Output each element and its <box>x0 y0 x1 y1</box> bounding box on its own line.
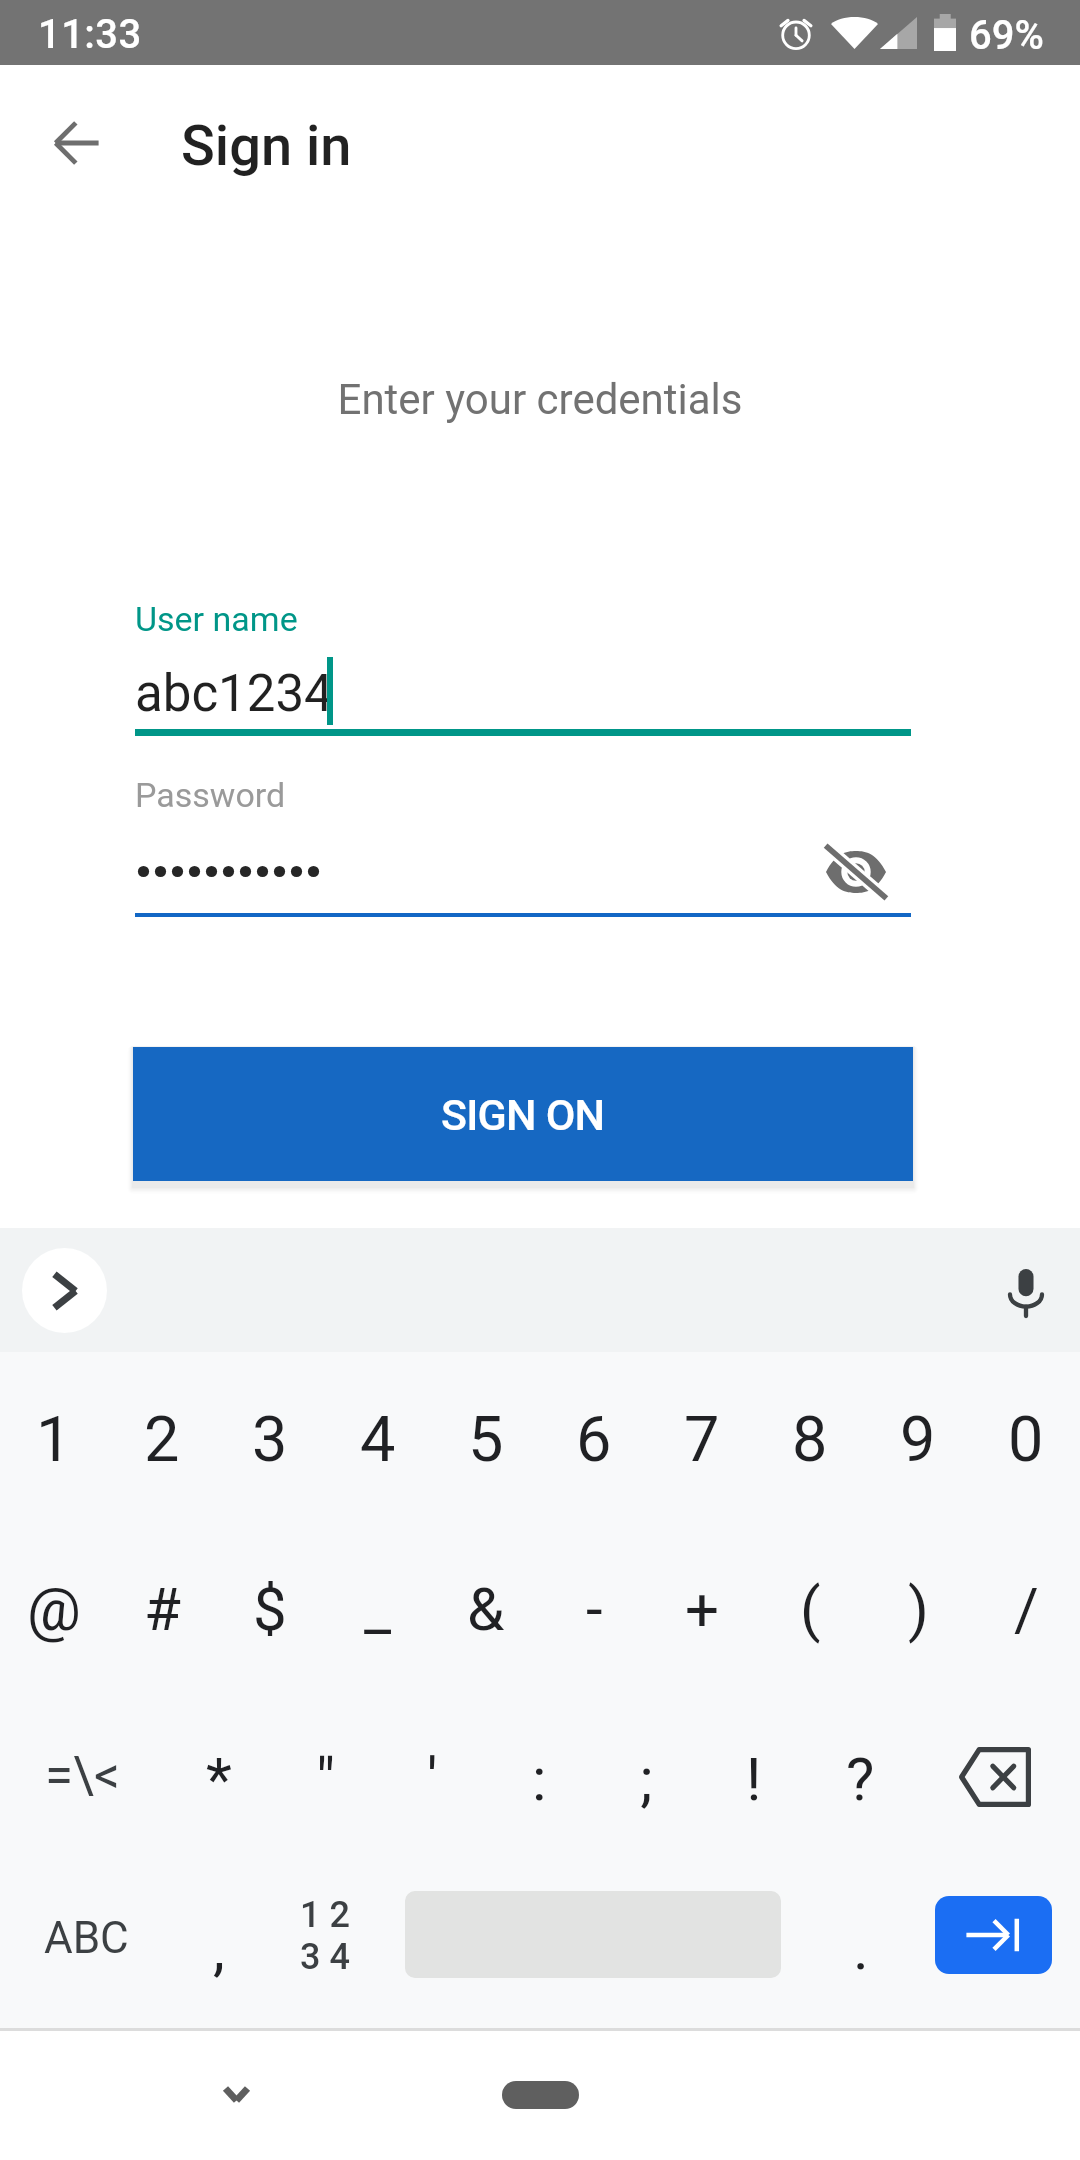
button[interactable]: 4 <box>324 1352 432 1521</box>
staticText: 9 <box>900 1403 936 1477</box>
button[interactable]: ABC <box>0 1859 165 2028</box>
button[interactable]: 1 <box>0 1352 108 1521</box>
button[interactable]: Show suggestions <box>22 1248 107 1333</box>
staticText: 5 <box>468 1403 504 1477</box>
staticText: Sign in <box>181 113 352 179</box>
button[interactable]: SIGN ON <box>133 1047 913 1181</box>
staticText: Password <box>135 775 286 815</box>
staticText: ; <box>640 1744 653 1814</box>
button[interactable]: Next field <box>935 1896 1052 1974</box>
staticText: 0 <box>1008 1403 1044 1477</box>
button[interactable]: Home <box>502 2081 579 2109</box>
button[interactable]: Backspace <box>914 1690 1080 1859</box>
staticText: $ <box>253 1574 287 1644</box>
button[interactable]: 2 <box>108 1352 216 1521</box>
button[interactable]: 7 <box>648 1352 756 1521</box>
staticText: 1 <box>36 1403 72 1477</box>
button[interactable]: _ <box>324 1521 432 1690</box>
staticText: / <box>1014 1574 1039 1644</box>
staticText: 8 <box>792 1403 828 1477</box>
staticText: 2 <box>144 1403 180 1477</box>
staticText: ABC <box>44 1912 129 1964</box>
button[interactable]: Show password <box>812 828 900 916</box>
button[interactable]: + <box>648 1521 756 1690</box>
staticText: @ <box>27 1574 81 1644</box>
button[interactable]: : <box>486 1690 593 1859</box>
staticText: , <box>213 1913 225 1983</box>
button[interactable]: ; <box>593 1690 700 1859</box>
button[interactable]: ( <box>756 1521 864 1690</box>
staticText: : <box>532 1744 547 1814</box>
staticText: _ <box>364 1574 392 1644</box>
staticText: 11:33 <box>38 11 142 58</box>
button[interactable]: Navigate up <box>33 99 121 187</box>
staticText: 3 <box>252 1403 288 1477</box>
button[interactable]: * <box>165 1690 272 1859</box>
staticText: ) <box>908 1574 929 1644</box>
button[interactable]: 0 <box>972 1352 1080 1521</box>
staticText: SIGN ON <box>441 1090 605 1140</box>
staticText: ! <box>746 1744 762 1814</box>
button[interactable]: ) <box>864 1521 972 1690</box>
button[interactable]: Hide keyboard <box>196 2054 276 2134</box>
button[interactable]: . <box>807 1859 914 2028</box>
button[interactable]: @ <box>0 1521 108 1690</box>
staticText: ' <box>427 1744 438 1814</box>
staticText: Enter your credentials <box>0 375 1080 424</box>
button[interactable]: ! <box>700 1690 807 1859</box>
button[interactable]: & <box>432 1521 540 1690</box>
staticText: 4 <box>360 1403 396 1477</box>
button[interactable]: 5 <box>432 1352 540 1521</box>
button[interactable]: - <box>540 1521 648 1690</box>
staticText: 69% <box>969 12 1044 59</box>
button[interactable]: 9 <box>864 1352 972 1521</box>
button[interactable]: / <box>972 1521 1080 1690</box>
staticText: 6 <box>576 1403 612 1477</box>
staticText: * <box>206 1744 232 1814</box>
button[interactable]: ' <box>379 1690 486 1859</box>
button[interactable]: $ <box>216 1521 324 1690</box>
staticText: - <box>586 1574 603 1644</box>
staticText: 7 <box>684 1403 720 1477</box>
button[interactable]: =\< <box>0 1690 165 1859</box>
staticText: ? <box>846 1744 875 1814</box>
button[interactable]: , <box>165 1859 272 2028</box>
staticText: User name <box>135 599 298 639</box>
button[interactable]: Numbers <box>272 1859 378 2028</box>
staticText: . <box>853 1913 869 1983</box>
staticText: 1 2 <box>300 1894 350 1936</box>
button[interactable]: " <box>272 1690 379 1859</box>
staticText: =\< <box>45 1746 120 1806</box>
staticText: 3 4 <box>300 1936 350 1978</box>
staticText: " <box>316 1744 336 1814</box>
button[interactable]: 8 <box>756 1352 864 1521</box>
staticText: # <box>144 1574 181 1644</box>
button[interactable]: Voice input <box>986 1252 1066 1332</box>
button[interactable]: ? <box>807 1690 914 1859</box>
staticText: abc1234 <box>135 664 333 724</box>
button[interactable]: 6 <box>540 1352 648 1521</box>
button[interactable]: # <box>108 1521 216 1690</box>
staticText: ( <box>800 1574 821 1644</box>
staticText: + <box>685 1574 720 1644</box>
staticText: & <box>467 1574 505 1644</box>
button[interactable]: 3 <box>216 1352 324 1521</box>
